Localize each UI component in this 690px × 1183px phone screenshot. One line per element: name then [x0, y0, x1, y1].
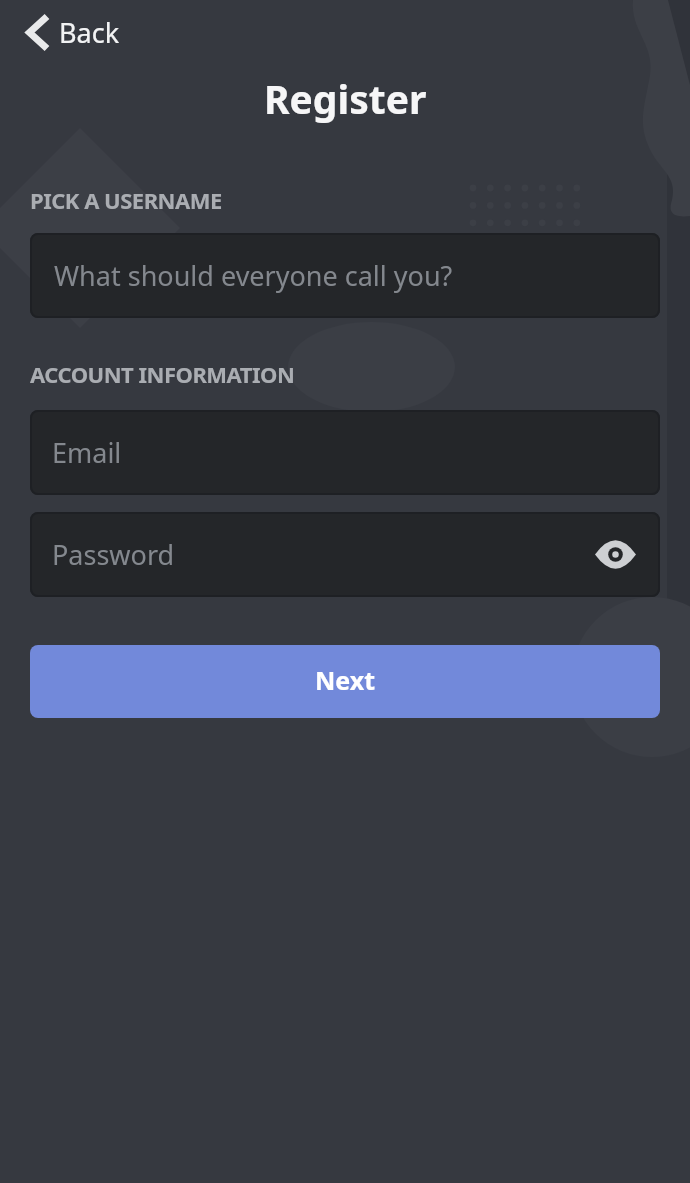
staticText: PICK A USERNAME: [30, 185, 222, 215]
staticText: Register: [264, 72, 427, 125]
button[interactable]: What should everyone call you?: [30, 233, 660, 318]
staticText: Next: [315, 663, 376, 697]
button[interactable]: Back: [16, 8, 130, 57]
staticText: Password: [52, 536, 175, 573]
staticText: Email: [52, 434, 122, 471]
button[interactable]: Next: [30, 645, 660, 718]
button[interactable]: Password: [30, 512, 660, 597]
staticText: Back: [59, 14, 120, 51]
staticText: What should everyone call you?: [54, 257, 453, 294]
button[interactable]: Email: [30, 410, 660, 495]
staticText: ACCOUNT INFORMATION: [30, 359, 295, 389]
